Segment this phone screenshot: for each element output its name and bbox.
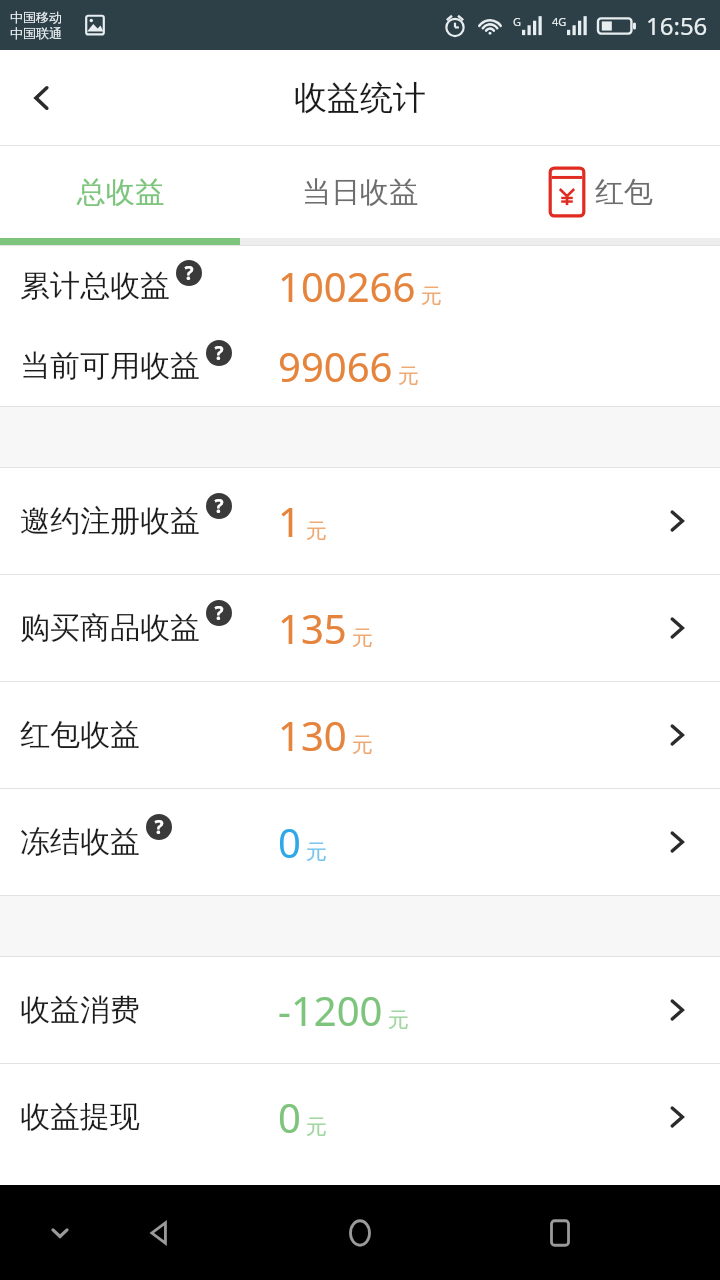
staticText: 当前可用收益 [20, 347, 200, 385]
staticText: ? [214, 340, 224, 366]
button[interactable]: 邀约注册收益 [0, 468, 720, 574]
staticText: 累计总收益 [20, 267, 170, 305]
staticText: 130 [278, 708, 347, 762]
staticText: 99066 [278, 339, 393, 393]
button[interactable]: 总收益 [0, 146, 240, 238]
button[interactable]: Hide keyboard [40, 1213, 80, 1253]
staticText: 中国移动 [10, 9, 62, 25]
button[interactable]: 收益消费 [0, 957, 720, 1063]
staticText: 邀约注册收益 [20, 502, 200, 540]
staticText: 红包 [595, 174, 653, 211]
staticText: 元 [352, 732, 373, 758]
staticText: 元 [352, 625, 373, 651]
staticText: 135 [278, 601, 347, 655]
staticText: 元 [398, 363, 419, 389]
staticText: ? [184, 260, 194, 286]
button[interactable]: Home [330, 1203, 390, 1263]
staticText: 4G [552, 14, 567, 29]
button[interactable]: Recents [530, 1203, 590, 1263]
staticText: ? [214, 493, 224, 519]
button[interactable]: 累计总收益 [0, 246, 720, 326]
staticText: -1200 [278, 983, 383, 1037]
staticText: G [513, 14, 522, 29]
staticText: 元 [421, 283, 442, 309]
staticText: 元 [388, 1007, 409, 1033]
staticText: 中国联通 [10, 25, 62, 41]
staticText: 冻结收益 [20, 823, 140, 861]
button[interactable]: Back [130, 1203, 190, 1263]
staticText: 0 [278, 815, 301, 869]
staticText: 100266 [278, 259, 416, 313]
staticText: 购买商品收益 [20, 609, 200, 647]
staticText: 16:56 [646, 9, 708, 42]
button[interactable]: Back [0, 50, 84, 146]
staticText: 红包收益 [20, 716, 140, 754]
button[interactable]: 购买商品收益 [0, 575, 720, 681]
button[interactable]: 当日收益 [240, 146, 480, 238]
staticText: 0 [278, 1090, 301, 1144]
staticText: 收益消费 [20, 991, 140, 1029]
staticText: 收益提现 [20, 1098, 140, 1136]
button[interactable]: 当前可用收益 [0, 326, 720, 406]
staticText: 总收益 [77, 174, 164, 211]
staticText: 当日收益 [302, 174, 418, 211]
staticText: ? [154, 814, 164, 840]
staticText: 收益统计 [294, 77, 426, 119]
staticText: ? [214, 600, 224, 626]
button[interactable]: 收益提现 [0, 1064, 720, 1170]
button[interactable]: 红包 [480, 146, 720, 238]
staticText: 元 [306, 1114, 327, 1140]
button[interactable]: 红包收益 [0, 682, 720, 788]
staticText: 元 [306, 518, 327, 544]
staticText: 元 [306, 839, 327, 865]
staticText: 1 [278, 494, 301, 548]
button[interactable]: 冻结收益 [0, 789, 720, 895]
